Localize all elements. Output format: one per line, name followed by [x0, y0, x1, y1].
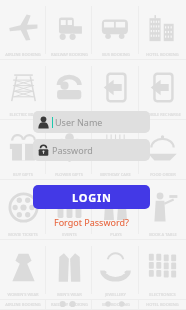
button[interactable]: PLAYS — [92, 180, 139, 240]
staticText: ELECTRONICS — [149, 292, 176, 297]
button[interactable]: BUS BOOKING — [92, 300, 139, 310]
staticText: Forgot Password? — [54, 216, 129, 228]
staticText: MEN'S WEAR — [57, 292, 82, 297]
button[interactable]: EVENTS — [46, 180, 92, 240]
button[interactable]: BOOK A TABLE — [139, 180, 186, 240]
button[interactable]: Forgot Password? — [50, 212, 133, 232]
staticText: User Name — [55, 116, 103, 128]
staticText: JEWELLERY — [105, 292, 126, 297]
staticText: BUY GIFTS — [13, 172, 33, 177]
button[interactable]: Password — [33, 139, 150, 161]
button[interactable]: ELECTRONICS — [139, 240, 186, 300]
staticText: WOMEN'S WEAR — [7, 292, 39, 297]
staticText: FLOWER GIFTS — [55, 172, 83, 177]
staticText: RAILWAY BOOKING — [51, 52, 88, 57]
button[interactable]: LOGIN — [33, 185, 150, 209]
button[interactable]: WOMEN'S WEAR — [0, 240, 46, 300]
staticText: HOTEL BOOKING — [146, 302, 179, 307]
staticText: EVENTS — [62, 232, 77, 237]
staticText: Password — [52, 144, 93, 156]
button[interactable]: BUY GIFTS — [0, 120, 46, 180]
staticText: FOOD ORDER — [150, 172, 176, 177]
button[interactable]: MEN'S WEAR — [46, 240, 92, 300]
button[interactable]: LANDLINE BILL — [46, 60, 92, 120]
staticText: BUS BOOKING — [102, 302, 130, 307]
button[interactable]: User Name — [33, 111, 150, 133]
button[interactable]: RAILWAY BOOKING — [46, 300, 92, 310]
staticText: BOOK A TABLE — [149, 232, 177, 237]
button[interactable]: HOTEL BOOKING — [139, 0, 186, 60]
button[interactable]: BIRTHDAY CAKE — [92, 120, 139, 180]
button[interactable]: AIRLINE BOOKING — [0, 0, 46, 60]
button[interactable]: AIRLINE BOOKING — [0, 300, 46, 310]
button[interactable]: BUS BOOKING — [92, 0, 139, 60]
button[interactable]: ELECTRIC BILL — [0, 60, 46, 120]
staticText: BUS BOOKING — [102, 52, 130, 57]
button[interactable]: JEWELLERY — [92, 240, 139, 300]
staticText: RAILWAY BOOKING — [51, 302, 88, 307]
staticText: AIRLINE BOOKING — [5, 302, 41, 307]
button[interactable]: HOTEL BOOKING — [139, 300, 186, 310]
staticText: HOTEL BOOKING — [146, 52, 179, 57]
button[interactable]: MOBILE RECHARGE — [139, 60, 186, 120]
button[interactable]: MOBILE RECHARGE — [92, 60, 139, 120]
button[interactable]: FOOD ORDER — [139, 120, 186, 180]
button[interactable]: MOVIE TICKETS — [0, 180, 46, 240]
staticText: MOBILE RECHARGE — [144, 112, 181, 117]
staticText: MOVIE TICKETS — [8, 232, 38, 237]
staticText: LOGIN — [72, 190, 112, 205]
staticText: AIRLINE BOOKING — [5, 52, 41, 57]
button[interactable]: RAILWAY BOOKING — [46, 0, 92, 60]
button[interactable]: FLOWER GIFTS — [46, 120, 92, 180]
staticText: PLAYS — [110, 232, 122, 237]
staticText: ELECTRIC BILL — [9, 112, 37, 117]
staticText: BIRTHDAY CAKE — [100, 172, 131, 177]
